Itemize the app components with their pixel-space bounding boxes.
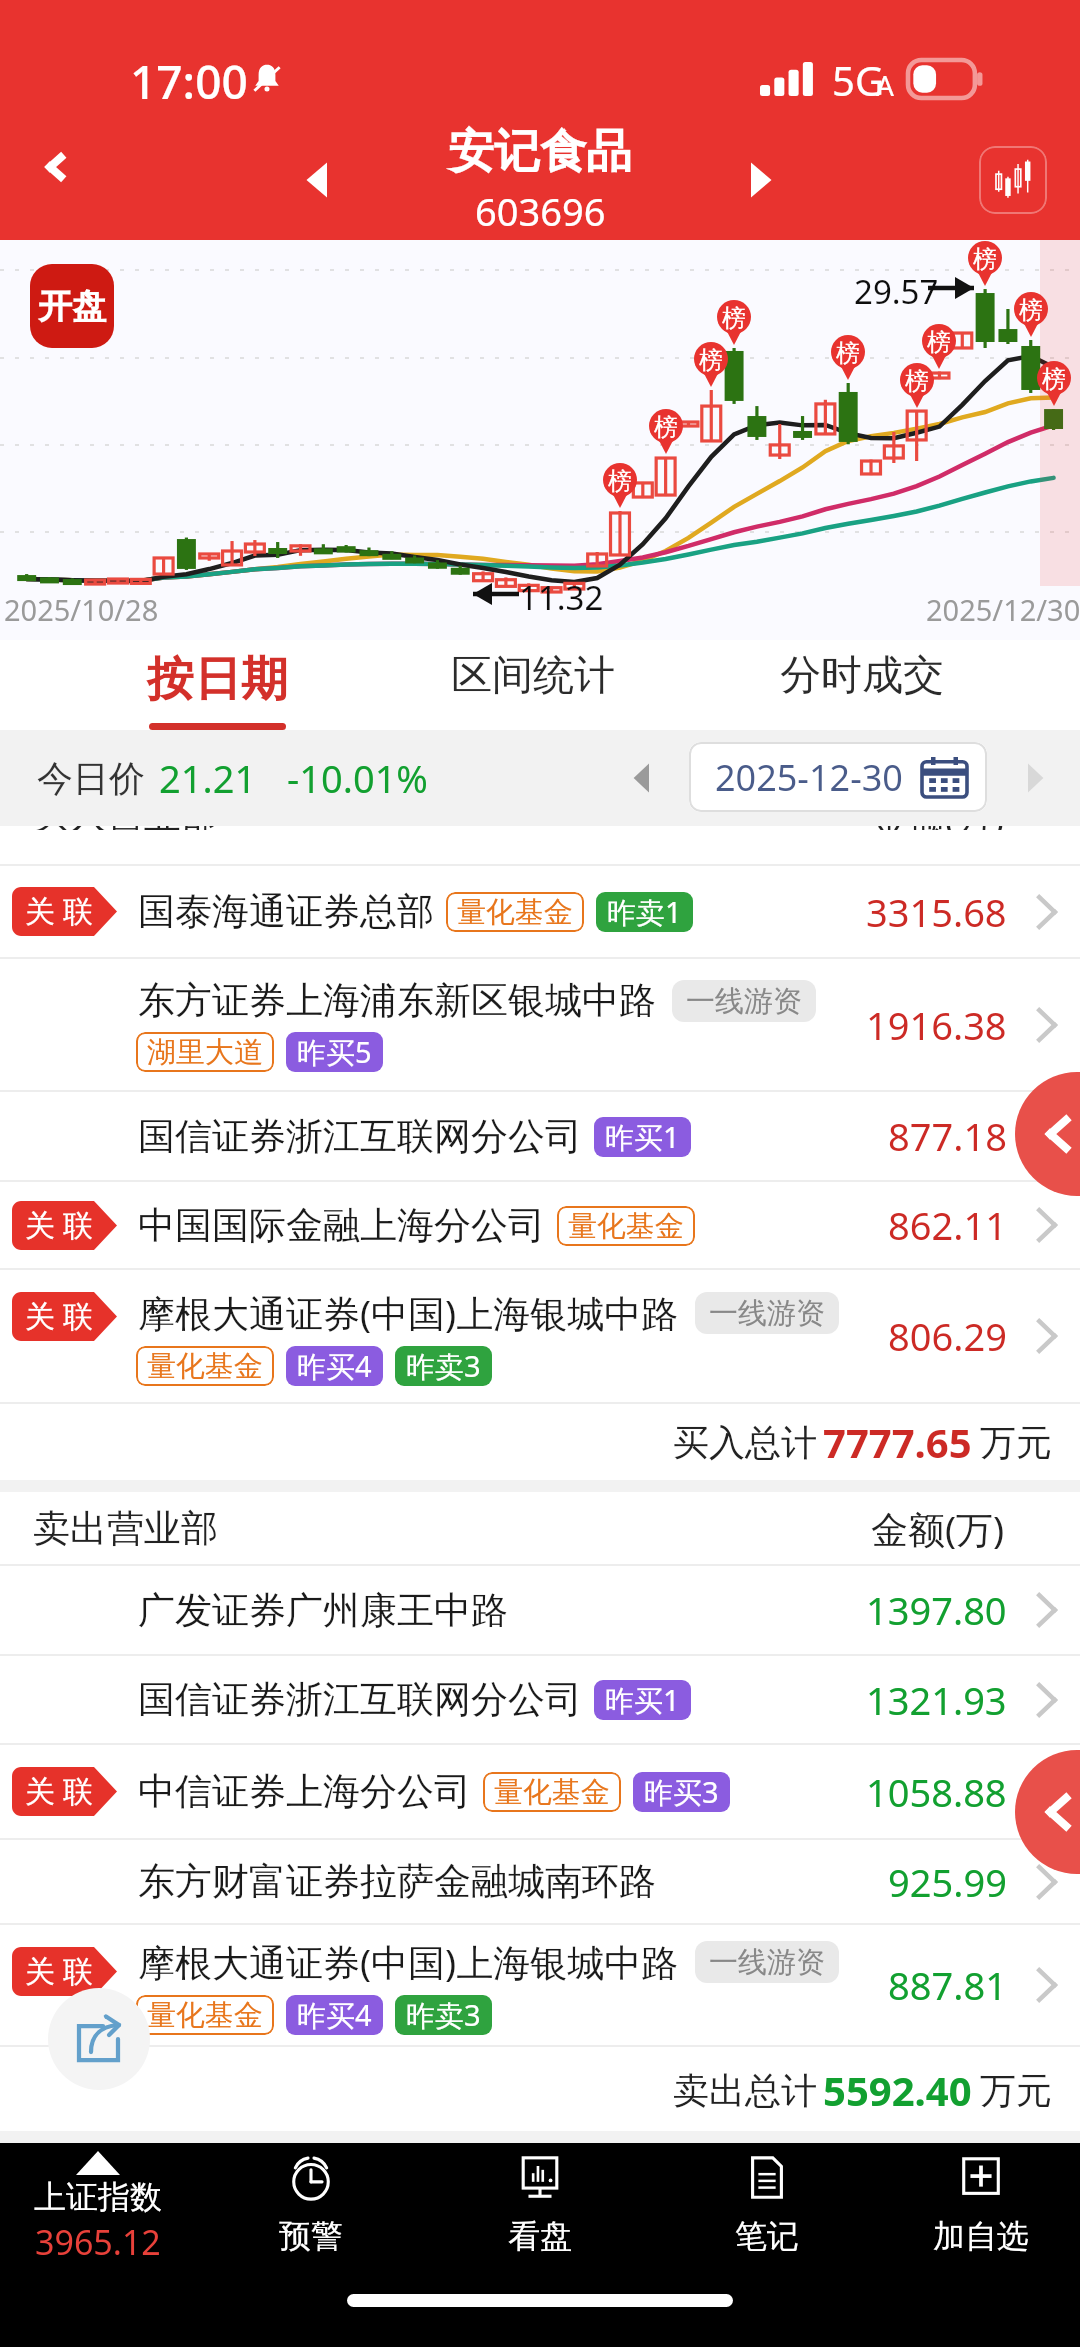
staticText: 广发证券广州康王中路 <box>138 1587 508 1634</box>
staticText: 分时成交 <box>780 650 944 702</box>
staticText: A <box>876 66 894 104</box>
staticText: 862.11 <box>888 1199 1007 1251</box>
staticText: 量化基金 <box>457 894 573 931</box>
staticText: 877.18 <box>888 1110 1007 1162</box>
button[interactable]: Previous page <box>1015 1072 1080 1196</box>
staticText: 中国国际金融上海分公司 <box>138 1202 545 1249</box>
staticText: 一线游资 <box>709 1944 825 1981</box>
staticText: 昨买4 <box>297 1346 372 1386</box>
button[interactable]: Previous page <box>1015 1750 1080 1874</box>
staticText: 联 <box>63 1207 93 1245</box>
staticText: 昨买1 <box>605 1680 680 1720</box>
staticText: 榜 <box>836 338 860 368</box>
button[interactable]: 按日期 <box>67 640 367 730</box>
staticText: 昨买5 <box>297 1032 372 1072</box>
staticText: 关 <box>25 893 55 931</box>
staticText: 湖里大道 <box>147 1034 263 1071</box>
staticText: 榜 <box>699 345 723 375</box>
staticText: 量化基金 <box>147 1348 263 1385</box>
staticText: 7777.65 <box>823 1415 972 1469</box>
staticText: 榜 <box>608 466 632 496</box>
button[interactable]: 笔记 <box>677 2143 857 2283</box>
button[interactable]: Next day <box>1005 730 1065 826</box>
staticText: 量化基金 <box>568 1208 684 1245</box>
button[interactable]: 区间统计 <box>383 640 683 730</box>
button[interactable]: 看盘 <box>450 2143 630 2283</box>
staticText: 预警 <box>279 2216 343 2256</box>
staticText: 今日价 <box>37 756 145 801</box>
staticText: 联 <box>63 1298 93 1336</box>
button[interactable]: 2025-12-30 <box>689 742 987 812</box>
staticText: 5592.40 <box>823 2063 972 2117</box>
staticText: 国信证券浙江互联网分公司 <box>138 1676 582 1723</box>
staticText: 1397.80 <box>866 1584 1007 1636</box>
staticText: 卖出总计 <box>673 2068 817 2113</box>
staticText: 卖出营业部 <box>33 1505 218 1552</box>
staticText: 11.32 <box>519 575 604 620</box>
staticText: 东方证券上海浦东新区银城中路 <box>138 977 656 1024</box>
button[interactable]: 广发证券广州康王中路 <box>0 1566 1080 1654</box>
button[interactable]: K line chart <box>958 120 1068 240</box>
button[interactable]: 东方财富证券拉萨金融城南环路 <box>0 1840 1080 1923</box>
button[interactable]: 分时成交 <box>712 640 1012 730</box>
button[interactable]: 关 <box>0 866 1080 957</box>
button[interactable]: 关 <box>0 1182 1080 1268</box>
staticText: 榜 <box>722 303 746 333</box>
staticText: 榜 <box>905 366 929 396</box>
staticText: 1916.38 <box>866 999 1007 1051</box>
staticText: 摩根大通证券(中国)上海银城中路 <box>138 1287 679 1338</box>
staticText: 摩根大通证券(中国)上海银城中路 <box>138 1936 679 1987</box>
staticText: 关 <box>25 1773 55 1811</box>
staticText: 1321.93 <box>866 1674 1007 1726</box>
staticText: 上证指数 <box>34 2177 162 2217</box>
staticText: 昨卖1 <box>607 892 682 932</box>
staticText: 榜 <box>927 327 951 357</box>
staticText: 关 <box>25 1207 55 1245</box>
staticText: 1058.88 <box>866 1766 1007 1818</box>
staticText: 昨买3 <box>644 1772 719 1812</box>
staticText: 925.99 <box>888 1856 1007 1908</box>
staticText: 关 <box>25 1298 55 1336</box>
staticText: 看盘 <box>508 2216 572 2256</box>
staticText: 603696 <box>475 185 606 237</box>
button[interactable]: 关 <box>0 1270 1080 1402</box>
staticText: 3965.12 <box>35 2219 161 2265</box>
button[interactable]: Back <box>8 120 104 240</box>
staticText: 买入营业部 <box>33 826 218 830</box>
staticText: 加自选 <box>933 2216 1029 2256</box>
staticText: 887.81 <box>888 1959 1007 2011</box>
staticText: 中信证券上海分公司 <box>138 1768 471 1815</box>
button[interactable]: Share <box>48 1988 150 2090</box>
staticText: 按日期 <box>147 650 288 709</box>
staticText: 一线游资 <box>686 983 802 1020</box>
staticText: 区间统计 <box>451 650 615 702</box>
button[interactable]: 上证指数 <box>0 2143 196 2283</box>
button[interactable]: Next stock <box>700 120 820 240</box>
staticText: 量化基金 <box>494 1774 610 1811</box>
staticText: 金额(万) <box>871 1503 1005 1554</box>
staticText: 笔记 <box>735 2216 799 2256</box>
staticText: 量化基金 <box>147 1997 263 2034</box>
staticText: 2025-12-30 <box>715 753 903 802</box>
button[interactable]: 预警 <box>221 2143 401 2283</box>
button[interactable]: 东方证券上海浦东新区银城中路 <box>0 959 1080 1090</box>
staticText: 21.21 <box>159 752 257 804</box>
button[interactable]: 国信证券浙江互联网分公司 <box>0 1656 1080 1743</box>
staticText: 万元 <box>980 2068 1052 2113</box>
button[interactable]: 加自选 <box>891 2143 1071 2283</box>
button[interactable]: 关 <box>0 1925 1080 2045</box>
staticText: 17:00 <box>130 50 248 113</box>
button[interactable]: 关 <box>0 1745 1080 1838</box>
button[interactable]: Previous stock <box>258 120 378 240</box>
staticText: 榜 <box>1019 295 1043 325</box>
staticText: 2025/12/30 <box>926 590 1080 629</box>
staticText: 3315.68 <box>866 886 1007 938</box>
staticText: 关 <box>25 1953 55 1991</box>
staticText: 榜 <box>654 412 678 442</box>
button[interactable]: Previous day <box>612 730 672 826</box>
staticText: 昨卖3 <box>406 1995 481 2035</box>
staticText: 国泰海通证券总部 <box>138 888 434 935</box>
staticText: 榜 <box>1042 364 1066 394</box>
staticText: 联 <box>63 893 93 931</box>
button[interactable]: 国信证券浙江互联网分公司 <box>0 1092 1080 1180</box>
